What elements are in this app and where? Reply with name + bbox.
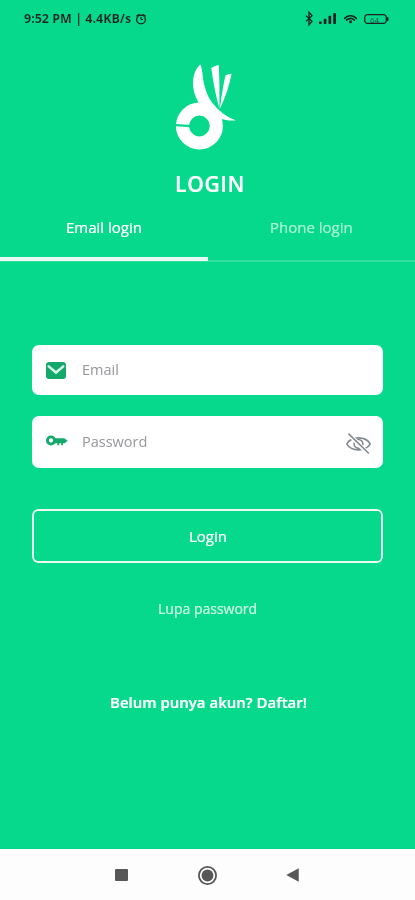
button[interactable]: Belum punya akun? Daftar! — [102, 689, 315, 715]
button[interactable]: Show password — [343, 429, 369, 455]
button[interactable]: Phone login — [207, 210, 415, 244]
button[interactable]: Email — [32, 345, 383, 395]
staticText: 9:52 PM | 4.4KB/s — [24, 10, 132, 27]
staticText: Password — [82, 432, 148, 452]
staticText: Email login — [66, 217, 142, 237]
staticText: LOGIN — [175, 170, 246, 199]
button[interactable]: Back — [268, 851, 316, 899]
staticText: 64 — [370, 14, 380, 24]
staticText: Belum punya akun? Daftar! — [110, 692, 307, 712]
staticText: Lupa password — [158, 599, 258, 618]
button[interactable]: Home — [183, 851, 231, 899]
button[interactable]: Email login — [0, 210, 207, 244]
button[interactable]: Login — [32, 509, 383, 563]
button[interactable]: Lupa password — [150, 596, 266, 621]
button[interactable]: Password — [32, 416, 383, 468]
staticText: Phone login — [270, 217, 353, 237]
staticText: Email — [82, 360, 119, 380]
button[interactable]: Recent apps — [97, 851, 145, 899]
staticText: Login — [189, 526, 227, 546]
